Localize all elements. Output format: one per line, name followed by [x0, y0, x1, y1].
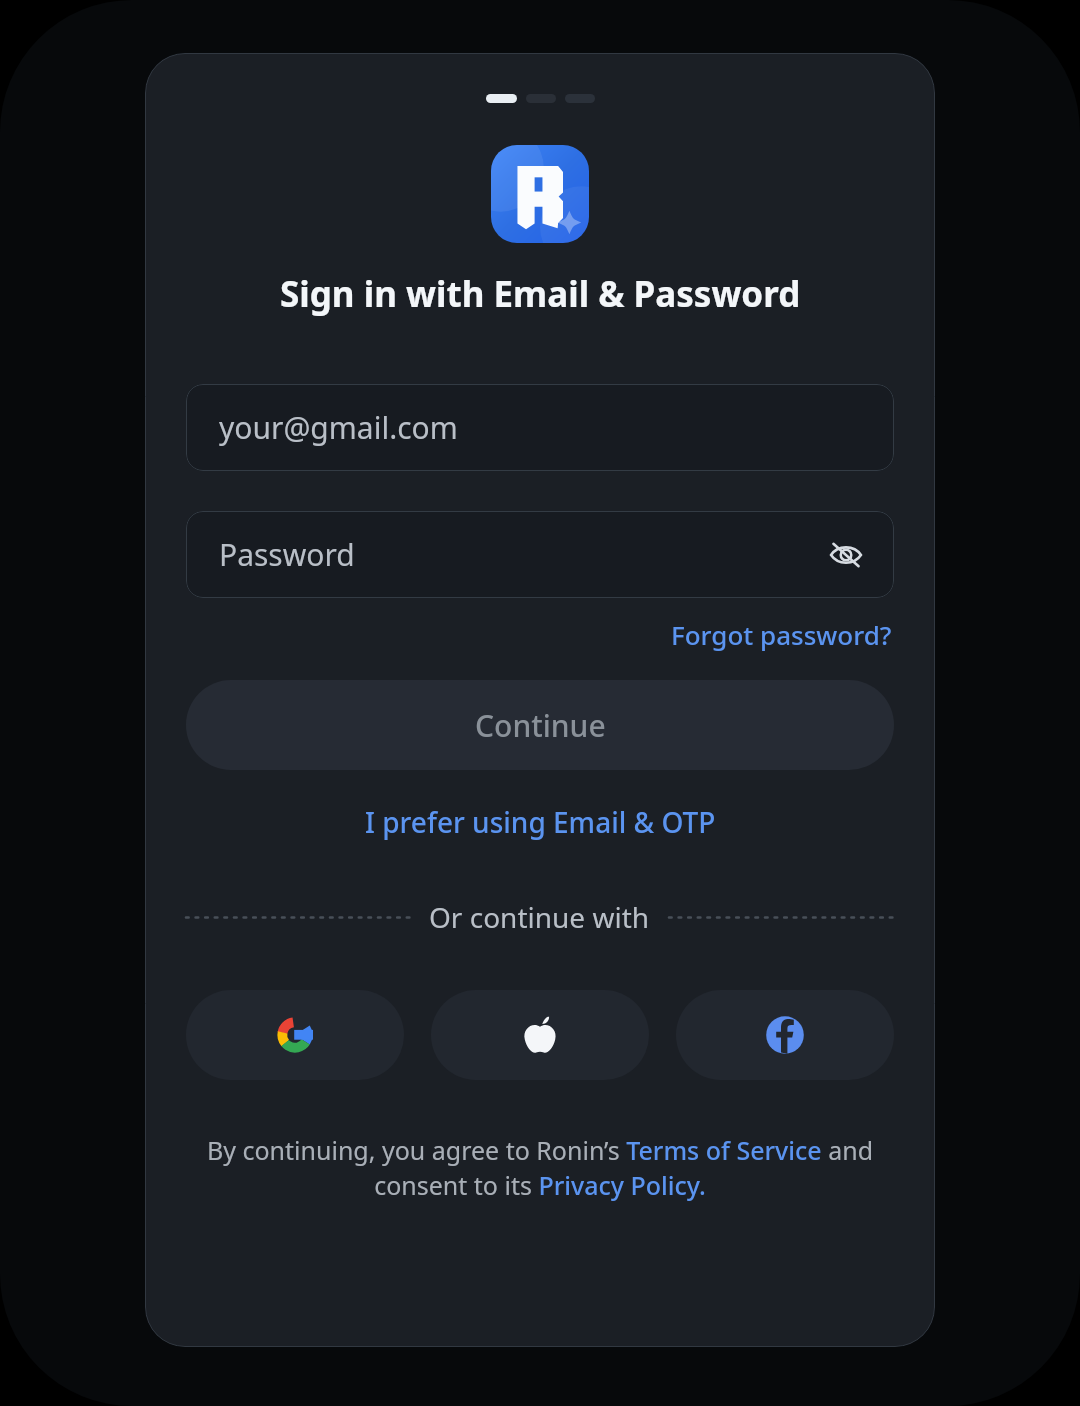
staticText: Password — [219, 534, 355, 575]
button[interactable]: By continuing, you agree to Ronin’s Term… — [183, 1133, 897, 1203]
staticText: I prefer using Email & OTP — [365, 803, 716, 841]
button[interactable]: Sign in with Facebook — [676, 990, 894, 1080]
staticText: Forgot password? — [671, 617, 892, 652]
button[interactable]: Show password — [820, 529, 872, 581]
button[interactable]: Sign in with Google — [186, 990, 404, 1080]
button[interactable]: Forgot password? — [669, 615, 894, 654]
staticText: Continue — [475, 705, 606, 746]
staticText: your@gmail.com — [219, 407, 458, 448]
staticText: Sign in with Email & Password — [280, 270, 801, 318]
button[interactable]: Password — [186, 511, 894, 598]
button[interactable]: Sign in with Apple — [431, 990, 649, 1080]
button[interactable]: I prefer using Email & OTP — [361, 799, 720, 845]
button[interactable]: your@gmail.com — [186, 384, 894, 471]
staticText: Or continue with — [429, 898, 650, 936]
button[interactable]: Continue — [186, 680, 894, 770]
